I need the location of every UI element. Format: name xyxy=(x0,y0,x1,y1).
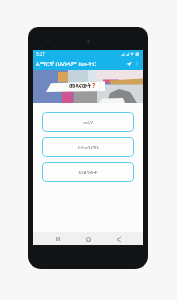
button[interactable]: አገልግሎት xyxy=(42,162,134,182)
button[interactable]: Back xyxy=(113,233,125,245)
staticText: አማርኛ በእስላም ዘውትር xyxy=(36,59,97,68)
staticText: አገልግሎት xyxy=(78,170,98,175)
button[interactable]: Recent apps xyxy=(52,233,64,245)
button[interactable]: የተመዝጋቢ xyxy=(42,137,134,157)
button[interactable]: Share xyxy=(124,59,133,68)
staticText: ? xyxy=(92,81,96,91)
staticText: መጻናውት xyxy=(69,82,92,90)
staticText: የተመዝጋቢ xyxy=(78,145,99,150)
button[interactable]: Home xyxy=(82,233,94,245)
button[interactable]: More options xyxy=(133,60,141,68)
staticText: መርሃ xyxy=(83,120,93,125)
button[interactable]: መርሃ xyxy=(42,112,134,132)
staticText: 5:27 xyxy=(36,51,45,57)
